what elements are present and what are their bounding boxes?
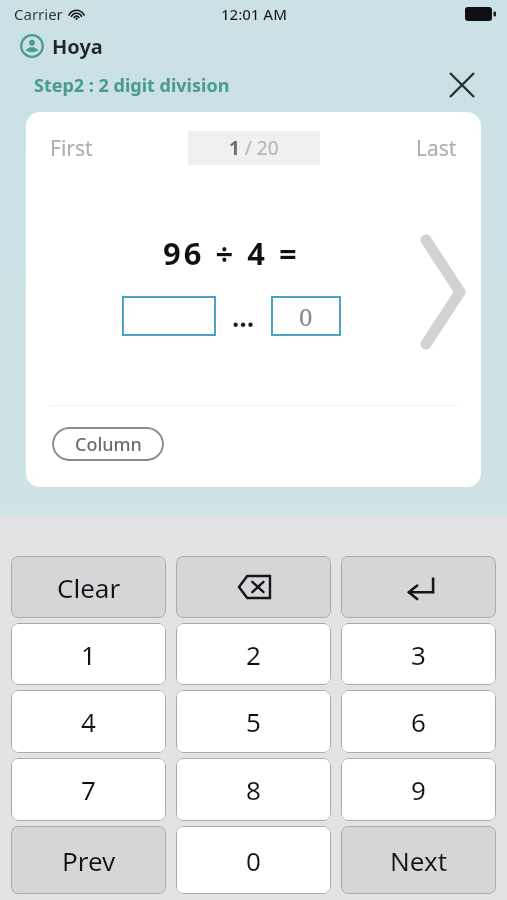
button[interactable]: 3 <box>341 623 496 685</box>
button[interactable]: Close <box>445 68 479 102</box>
button[interactable]: 6 <box>341 690 496 753</box>
button[interactable]: First <box>50 134 93 163</box>
staticText: 12:01 AM <box>221 4 287 24</box>
button[interactable]: 0 <box>271 296 341 336</box>
button[interactable]: 9 <box>341 758 496 821</box>
staticText: 1 / 20 <box>229 135 279 161</box>
button[interactable]: 8 <box>176 758 331 821</box>
staticText: 4 <box>81 704 96 739</box>
button[interactable]: Next <box>341 826 496 894</box>
staticText: Prev <box>62 843 116 878</box>
staticText: Carrier <box>14 4 63 24</box>
button[interactable]: Prev <box>11 826 166 894</box>
staticText: 0 <box>299 300 313 333</box>
staticText: 3 <box>411 637 426 672</box>
staticText: Clear <box>57 570 121 605</box>
button[interactable]: Next question <box>419 227 469 357</box>
button[interactable]: 4 <box>11 690 166 753</box>
staticText: 8 <box>246 772 261 807</box>
button[interactable]: Clear <box>11 556 166 618</box>
staticText: Column <box>75 432 142 457</box>
button[interactable]: Enter <box>341 556 496 618</box>
button[interactable]: 0 <box>176 826 331 894</box>
button[interactable]: 5 <box>176 690 331 753</box>
staticText: 96 ÷ 4 = <box>163 232 300 274</box>
staticText: … <box>232 299 255 334</box>
staticText: 7 <box>81 772 96 807</box>
button[interactable] <box>122 296 216 336</box>
staticText: 9 <box>411 772 426 807</box>
staticText: Step2 : 2 digit division <box>34 73 230 98</box>
staticText: 1 <box>81 637 96 672</box>
button[interactable]: 1 / 20 <box>188 131 320 165</box>
button[interactable]: 2 <box>176 623 331 685</box>
staticText: 0 <box>246 843 261 878</box>
button[interactable]: 7 <box>11 758 166 821</box>
staticText: 6 <box>411 704 426 739</box>
button[interactable]: Backspace <box>176 556 331 618</box>
staticText: Hoya <box>52 33 103 60</box>
staticText: Next <box>390 843 448 878</box>
staticText: 2 <box>246 637 261 672</box>
button[interactable]: Last <box>416 134 457 163</box>
button[interactable]: 1 <box>11 623 166 685</box>
staticText: 5 <box>246 704 261 739</box>
button[interactable]: Column <box>52 427 164 461</box>
